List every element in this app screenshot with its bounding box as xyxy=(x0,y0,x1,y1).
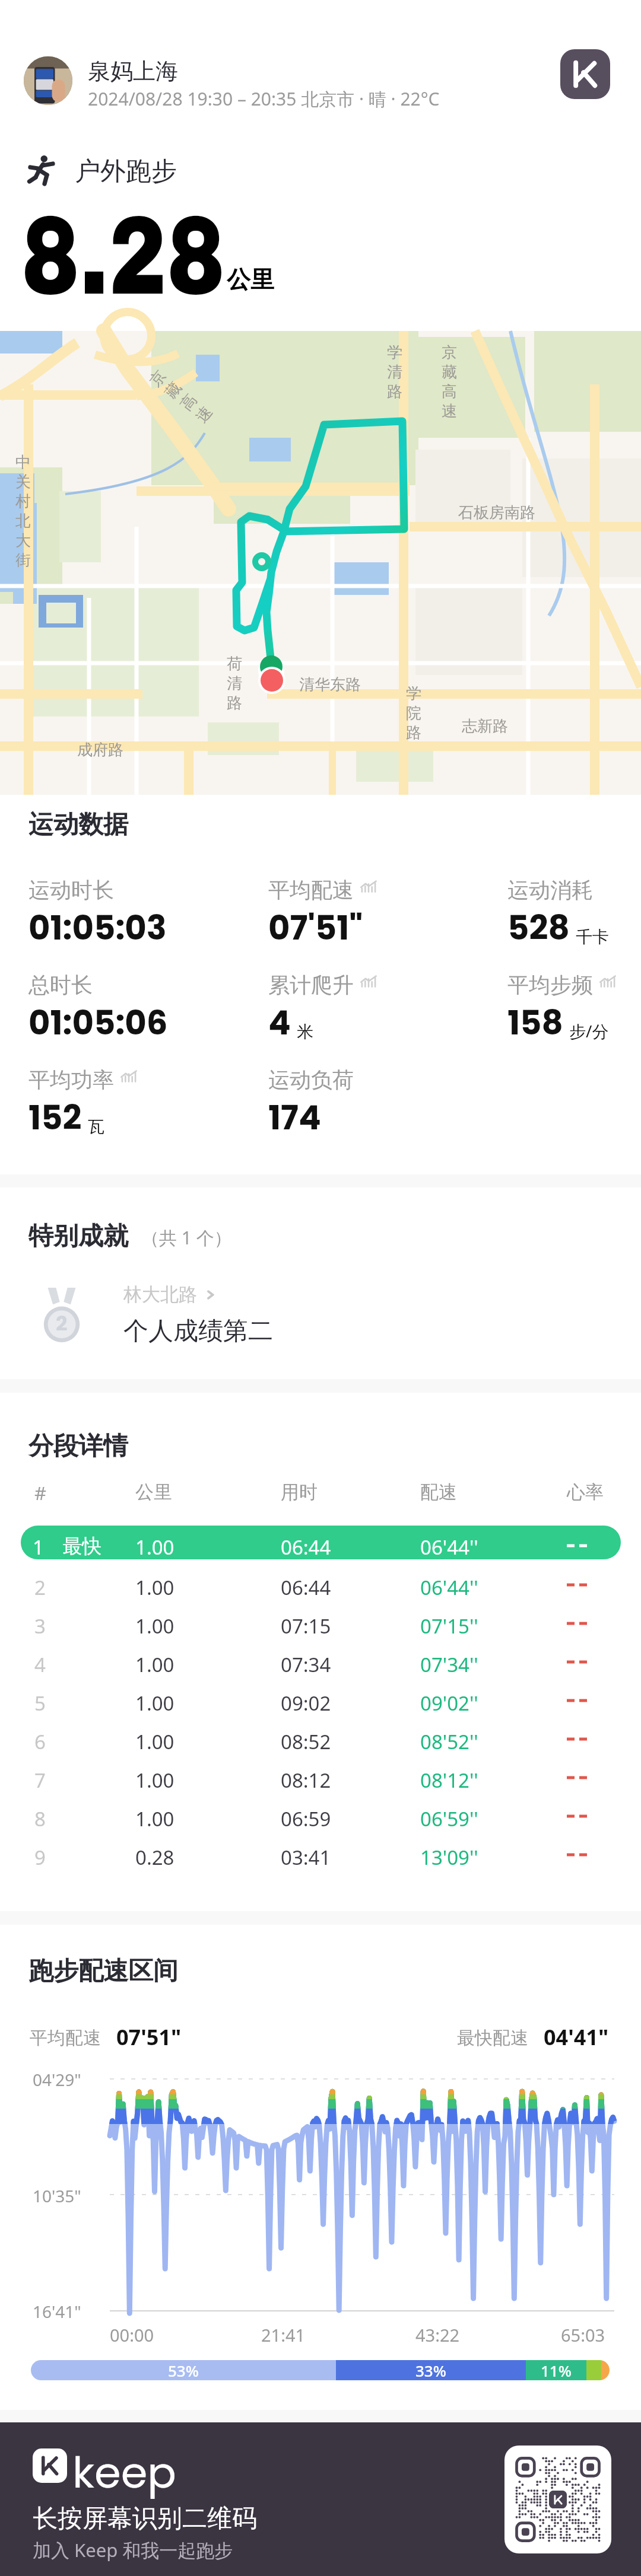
staticText: 9 xyxy=(34,1844,46,1871)
staticText: 06:59 xyxy=(281,1806,331,1832)
button[interactable] xyxy=(21,1526,621,1559)
staticText: 分段详情 xyxy=(28,1431,128,1462)
staticText: 学 xyxy=(387,343,402,362)
staticText: 累计爬升 xyxy=(268,972,354,998)
staticText: 个人成绩第二 xyxy=(123,1316,273,1347)
staticText: 林大北路 xyxy=(123,1283,197,1306)
staticText: 158 xyxy=(507,999,563,1046)
staticText: 中 xyxy=(15,453,31,472)
staticText: 07'51" xyxy=(116,2023,182,2052)
button[interactable] xyxy=(21,1757,621,1793)
staticText: 8 xyxy=(34,1806,46,1832)
staticText: 8.28 xyxy=(21,197,225,317)
staticText: 1.00 xyxy=(135,1728,174,1755)
staticText: 21:41 xyxy=(261,2323,306,2346)
staticText: 平均配速 xyxy=(30,2027,101,2049)
staticText: 06:44 xyxy=(281,1534,331,1561)
staticText: 0.28 xyxy=(135,1844,174,1871)
staticText: 运动时长 xyxy=(28,877,114,903)
staticText: 10'35" xyxy=(33,2185,81,2207)
staticText: 藏 xyxy=(161,378,186,403)
staticText: 户外跑步 xyxy=(75,155,177,187)
staticText: 瓦 xyxy=(88,1116,104,1137)
staticText: 00:00 xyxy=(110,2323,154,2346)
staticText: 08'12'' xyxy=(420,1767,478,1794)
staticText: 06:44 xyxy=(281,1574,331,1601)
staticText: 33% xyxy=(415,2360,446,2380)
button[interactable] xyxy=(21,1642,621,1677)
staticText: （共 1 个） xyxy=(141,1225,232,1250)
button[interactable]: Keep logo xyxy=(560,49,610,99)
staticText: 千卡 xyxy=(576,926,609,947)
button[interactable] xyxy=(21,1796,621,1832)
button[interactable]: 2 xyxy=(24,1279,617,1351)
staticText: 16'41" xyxy=(33,2300,81,2323)
button[interactable] xyxy=(21,1680,621,1716)
staticText: 2024/08/28 19:30 – 20:35 北京市 · 晴 · 22°C xyxy=(88,87,440,111)
staticText: 06'44'' xyxy=(420,1574,478,1601)
staticText: 北 xyxy=(15,511,31,531)
staticText: 公里 xyxy=(227,265,274,294)
staticText: 京 xyxy=(442,343,457,362)
staticText: 07'51" xyxy=(268,905,363,951)
staticText: 藏 xyxy=(442,362,457,382)
staticText: 09'02'' xyxy=(420,1690,478,1717)
staticText: 米 xyxy=(297,1021,313,1042)
staticText: 4 xyxy=(34,1651,46,1678)
staticText: 最快配速 xyxy=(457,2027,528,2049)
staticText: 2 xyxy=(56,1309,68,1338)
staticText: 1 xyxy=(33,1534,44,1561)
staticText: 08:12 xyxy=(281,1767,331,1794)
staticText: 清 xyxy=(387,362,402,382)
staticText: 1.00 xyxy=(135,1534,174,1561)
staticText: 清 xyxy=(227,674,242,693)
button[interactable] xyxy=(21,1565,621,1600)
staticText: 1.00 xyxy=(135,1574,174,1601)
button[interactable] xyxy=(21,1835,621,1870)
staticText: 泉妈上海 xyxy=(88,57,178,85)
staticText: 07:34 xyxy=(281,1651,331,1678)
staticText: 运动数据 xyxy=(28,809,128,840)
staticText: 总时长 xyxy=(28,972,93,998)
staticText: 08'52'' xyxy=(420,1728,478,1755)
staticText: 4 xyxy=(268,999,291,1046)
staticText: 1.00 xyxy=(135,1613,174,1639)
staticText: 1.00 xyxy=(135,1806,174,1832)
staticText: 学 xyxy=(406,684,421,703)
staticText: 步/分 xyxy=(569,1020,609,1042)
staticText: 08:52 xyxy=(281,1728,331,1755)
staticText: 运动负荷 xyxy=(268,1066,354,1093)
staticText: 53% xyxy=(168,2360,199,2380)
staticText: 关 xyxy=(15,472,31,492)
staticText: 平均步频 xyxy=(507,972,593,998)
staticText: 心率 xyxy=(567,1480,604,1504)
staticText: 1.00 xyxy=(135,1651,174,1678)
staticText: 路 xyxy=(406,723,421,743)
button[interactable] xyxy=(21,1603,621,1639)
button[interactable]: Avatar xyxy=(24,56,72,105)
staticText: 01:05:06 xyxy=(28,999,168,1046)
staticText: 高 xyxy=(176,390,201,415)
staticText: # xyxy=(34,1480,47,1505)
staticText: 高 xyxy=(442,382,457,402)
staticText: 06'44'' xyxy=(420,1534,478,1561)
staticText: 运动消耗 xyxy=(507,877,593,903)
staticText: 街 xyxy=(15,550,31,570)
staticText: 清华东路 xyxy=(299,675,361,695)
staticText: 志新路 xyxy=(462,717,508,736)
staticText: 成府路 xyxy=(77,740,123,760)
staticText: 公里 xyxy=(135,1480,172,1504)
staticText: 大 xyxy=(15,531,31,550)
staticText: 152 xyxy=(28,1094,82,1141)
staticText: 1.00 xyxy=(135,1690,174,1717)
staticText: 11% xyxy=(541,2360,572,2380)
staticText: 65:03 xyxy=(561,2323,605,2346)
staticText: 7 xyxy=(34,1767,46,1794)
button[interactable] xyxy=(21,1719,621,1755)
staticText: keep xyxy=(72,2443,177,2502)
staticText: 06'59'' xyxy=(420,1806,478,1832)
staticText: 石板房南路 xyxy=(458,503,535,523)
staticText: 平均配速 xyxy=(268,877,354,903)
button[interactable]: QR code xyxy=(504,2446,611,2553)
staticText: 04'29" xyxy=(33,2068,81,2091)
